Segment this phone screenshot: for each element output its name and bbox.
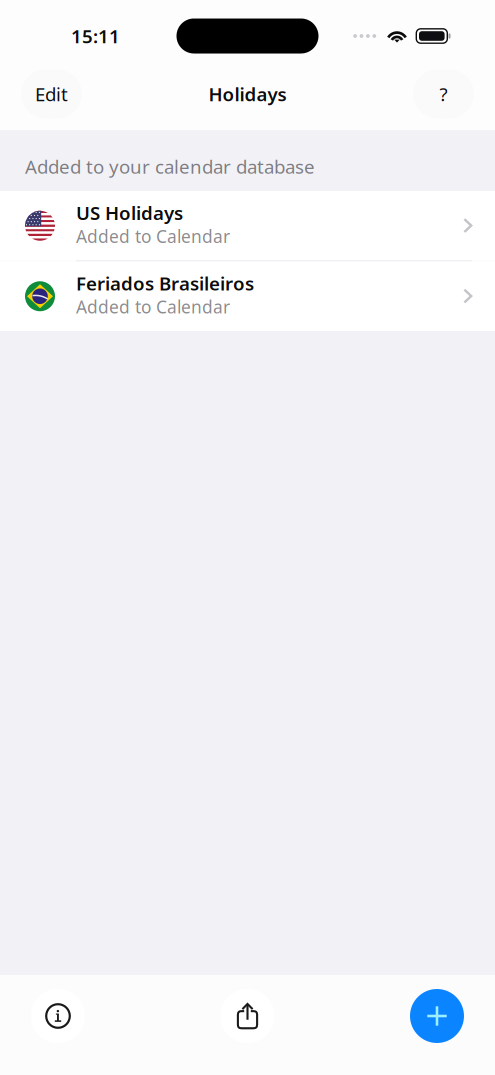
staticText: Added to Calendar (76, 295, 230, 318)
button[interactable]: US Holidays (0, 191, 495, 260)
staticText: ? (439, 82, 447, 106)
button[interactable]: Help (413, 69, 474, 118)
staticText: Holidays (208, 82, 286, 106)
staticText: Added to your calendar database (25, 154, 315, 179)
button[interactable]: Feriados Brasileiros (0, 261, 495, 331)
button[interactable]: Edit (21, 69, 82, 118)
staticText: 15:11 (71, 24, 120, 48)
button[interactable]: Add calendar (410, 989, 464, 1043)
button[interactable]: Share (220, 989, 274, 1043)
staticText: Feriados Brasileiros (76, 271, 254, 296)
staticText: Added to Calendar (76, 225, 230, 248)
staticText: Edit (35, 82, 68, 106)
staticText: US Holidays (76, 200, 183, 225)
button[interactable]: Info (31, 989, 85, 1043)
